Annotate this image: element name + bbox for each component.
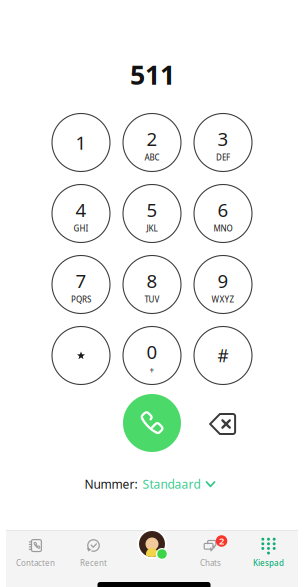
staticText: 9 <box>217 268 228 293</box>
button[interactable]: 7 <box>52 255 110 313</box>
staticText: 3 <box>217 126 228 151</box>
staticText: PQRS <box>71 294 91 305</box>
button[interactable]: 2 <box>181 527 239 563</box>
button[interactable]: 9 <box>194 255 252 313</box>
staticText: GHI <box>73 223 88 234</box>
staticText: 0 <box>146 339 157 364</box>
staticText: ABC <box>144 152 159 163</box>
button[interactable]: Contacten <box>6 527 64 563</box>
button[interactable]: # <box>194 326 252 384</box>
staticText: 8 <box>146 268 157 293</box>
button[interactable]: Call <box>123 394 181 452</box>
staticText: 2 <box>219 535 224 547</box>
staticText: 5 <box>146 197 157 222</box>
button[interactable]: 4 <box>52 184 110 242</box>
button[interactable]: 0 <box>123 326 181 384</box>
staticText: 2 <box>146 126 157 151</box>
staticText: Recent <box>80 558 107 568</box>
button[interactable]: 8 <box>123 255 181 313</box>
staticText: # <box>217 344 228 367</box>
button[interactable]: Profile <box>123 526 181 562</box>
staticText: TUV <box>144 294 159 305</box>
button[interactable]: Recent <box>64 527 122 563</box>
staticText: JKL <box>146 223 157 234</box>
staticText: Kiespad <box>253 558 284 568</box>
staticText: DEF <box>216 152 230 163</box>
button[interactable]: 6 <box>194 184 252 242</box>
button[interactable] <box>52 326 110 384</box>
button[interactable]: Delete <box>198 403 246 445</box>
staticText: Nummer: <box>84 476 137 492</box>
button[interactable]: 3 <box>194 113 252 171</box>
staticText: 1 <box>75 130 86 155</box>
staticText: Contacten <box>16 558 55 568</box>
button[interactable]: 5 <box>123 184 181 242</box>
staticText: + <box>149 365 154 376</box>
staticText: WXYZ <box>211 294 234 305</box>
staticText: 4 <box>75 197 86 222</box>
staticText: 511 <box>130 57 175 92</box>
staticText: 6 <box>217 197 228 222</box>
button[interactable]: Kiespad <box>239 527 297 563</box>
staticText: MNO <box>213 223 232 234</box>
button[interactable]: 2 <box>123 113 181 171</box>
button[interactable]: Nummer: <box>84 473 215 495</box>
staticText: Chats <box>200 558 221 568</box>
staticText: Standaard <box>142 476 200 492</box>
button[interactable]: 1 <box>52 113 110 171</box>
staticText: 7 <box>75 268 86 293</box>
